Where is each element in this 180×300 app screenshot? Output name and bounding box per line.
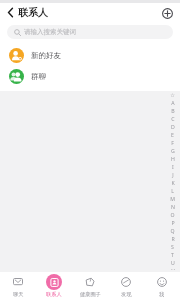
- staticText: R: [171, 235, 175, 242]
- staticText: 我: [159, 291, 165, 298]
- button[interactable]: 发现: [108, 272, 144, 300]
- staticText: J: [172, 171, 174, 178]
- button[interactable]: 群聊: [0, 66, 180, 87]
- staticText: 联系人: [46, 291, 62, 298]
- staticText: Q: [170, 227, 175, 234]
- staticText: M: [170, 195, 175, 202]
- staticText: B: [171, 107, 175, 114]
- staticText: ☆: [170, 92, 175, 98]
- staticText: A: [171, 99, 175, 106]
- staticText: S: [171, 243, 174, 250]
- button[interactable]: 聊天: [0, 272, 36, 300]
- staticText: 发现: [121, 291, 132, 298]
- staticText: C: [171, 115, 175, 122]
- staticText: O: [170, 211, 175, 218]
- staticText: 新的好友: [31, 51, 61, 60]
- staticText: P: [171, 219, 175, 226]
- staticText: V: [171, 267, 175, 270]
- staticText: 健康圈子: [80, 291, 101, 298]
- button[interactable]: Add contact: [159, 5, 175, 21]
- button[interactable]: 新的好友: [0, 45, 180, 66]
- staticText: N: [171, 203, 175, 210]
- button[interactable]: 请输入搜索关键词: [7, 25, 173, 39]
- staticText: 聊天: [13, 291, 24, 298]
- staticText: 群聊: [31, 72, 46, 81]
- staticText: U: [171, 259, 175, 266]
- staticText: H: [171, 155, 175, 162]
- button[interactable]: 健康圈子: [72, 272, 108, 300]
- button[interactable]: Alphabet index: [168, 92, 177, 270]
- staticText: L: [171, 187, 174, 194]
- button[interactable]: 联系人: [36, 272, 72, 300]
- button[interactable]: 我: [144, 272, 180, 300]
- staticText: E: [171, 131, 174, 138]
- staticText: I: [172, 163, 174, 170]
- button[interactable]: Back: [0, 6, 52, 19]
- staticText: G: [171, 147, 175, 154]
- staticText: K: [171, 179, 175, 186]
- staticText: 请输入搜索关键词: [24, 28, 76, 36]
- staticText: F: [171, 139, 174, 146]
- staticText: D: [171, 123, 175, 130]
- staticText: T: [171, 251, 174, 258]
- staticText: 联系人: [18, 6, 48, 19]
